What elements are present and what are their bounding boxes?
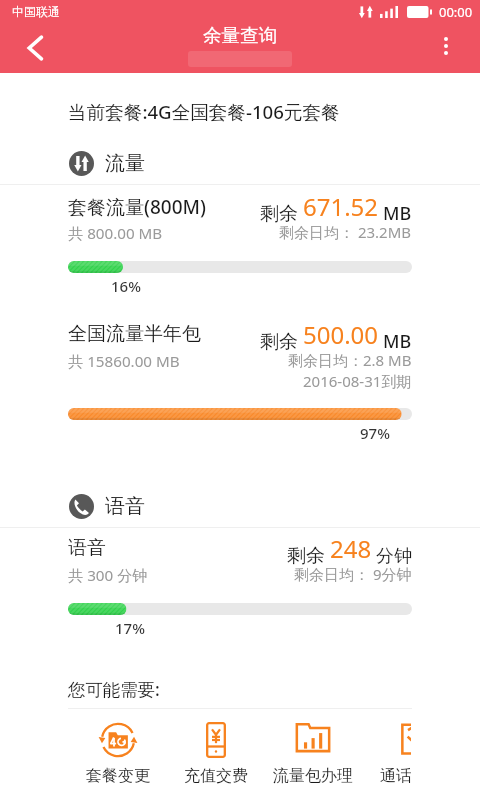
button[interactable] bbox=[171, 716, 261, 788]
staticText: 剩余 bbox=[287, 544, 325, 568]
staticText: 流量 bbox=[105, 151, 145, 176]
staticText: 剩余 bbox=[260, 202, 298, 226]
staticText: 当前套餐:4G全国套餐-106元套餐 bbox=[68, 99, 340, 124]
staticText: 00:00 bbox=[439, 3, 473, 21]
staticText: MB bbox=[383, 329, 412, 354]
staticText: 17% bbox=[115, 618, 145, 638]
staticText: 剩余日均： 23.2MB bbox=[279, 222, 412, 242]
staticText: 套餐流量(800M) bbox=[68, 194, 206, 220]
staticText: 中国联通 bbox=[12, 4, 60, 19]
button[interactable] bbox=[73, 716, 163, 788]
staticText: 流量包办理 bbox=[273, 766, 353, 786]
staticText: 语音 bbox=[105, 494, 145, 519]
staticText: 16% bbox=[111, 276, 141, 296]
staticText: 共 300 分钟 bbox=[68, 565, 148, 586]
staticText: 全国流量半年包 bbox=[68, 322, 201, 346]
button[interactable]: Back bbox=[12, 25, 58, 71]
staticText: 共 15860.00 MB bbox=[68, 351, 180, 372]
staticText: 剩余日均：2.8 MB bbox=[288, 350, 412, 370]
staticText: 671.52 bbox=[303, 190, 379, 223]
staticText: 分钟 bbox=[376, 545, 412, 568]
staticText: MB bbox=[383, 201, 412, 226]
button[interactable] bbox=[351, 716, 411, 788]
staticText: 剩余日均： 9分钟 bbox=[294, 564, 412, 584]
staticText: 500.00 bbox=[303, 318, 379, 351]
staticText: 248 bbox=[330, 532, 372, 565]
staticText: 通话 bbox=[380, 766, 411, 786]
staticText: 剩余 bbox=[260, 330, 298, 354]
staticText: 2016-08-31到期 bbox=[303, 371, 412, 391]
staticText: 语音 bbox=[68, 536, 106, 560]
staticText: 您可能需要: bbox=[68, 677, 160, 701]
staticText: 余量查询 bbox=[203, 24, 278, 47]
staticText: 共 800.00 MB bbox=[68, 223, 163, 244]
button[interactable]: More options bbox=[424, 24, 468, 68]
button[interactable] bbox=[268, 716, 358, 788]
staticText: 套餐变更 bbox=[86, 766, 150, 786]
staticText: 97% bbox=[360, 423, 390, 443]
staticText: 充值交费 bbox=[184, 766, 248, 786]
